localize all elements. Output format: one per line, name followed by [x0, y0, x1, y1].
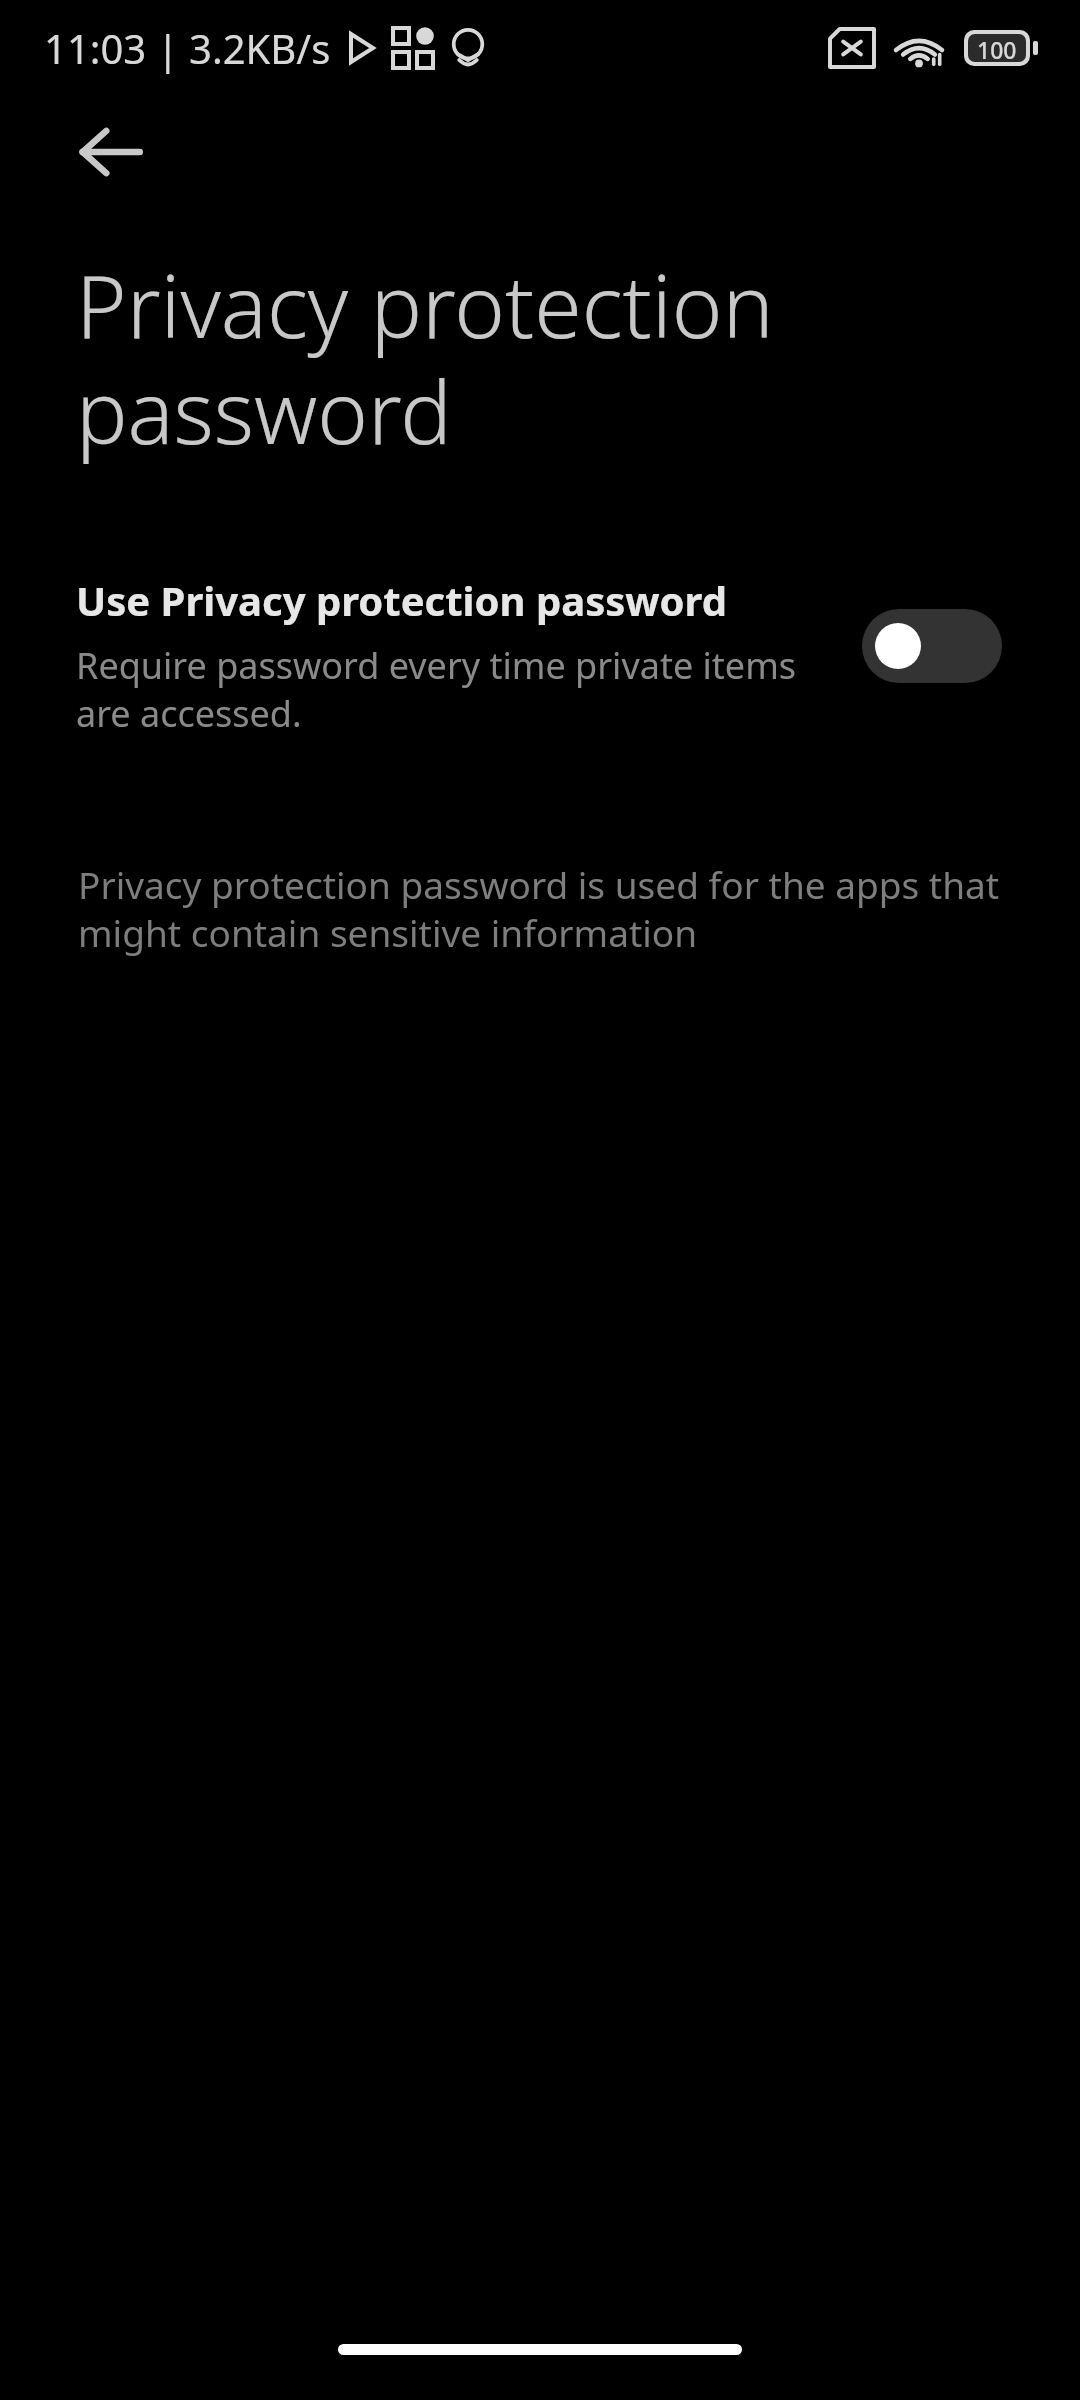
staticText: Use Privacy protection password [76, 573, 727, 627]
button[interactable]: Back [42, 96, 178, 208]
staticText: Privacy protection password [76, 246, 774, 469]
button[interactable]: Use Privacy protection password toggle [862, 609, 1002, 683]
staticText: 11:03 | 3.2KB/s [44, 21, 331, 75]
staticText: Require password every time private item… [76, 641, 836, 737]
button[interactable]: Use Privacy protection password [0, 569, 1080, 741]
staticText: 100 [977, 34, 1017, 62]
staticText: Privacy protection password is used for … [78, 859, 1018, 958]
